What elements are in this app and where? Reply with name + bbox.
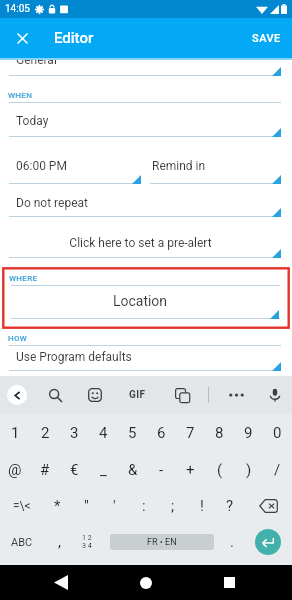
button[interactable]: 4 [89, 415, 118, 451]
staticText: + [186, 461, 195, 479]
button[interactable]: Translate [171, 384, 193, 406]
staticText: ; [171, 497, 175, 515]
button[interactable]: " [72, 488, 101, 524]
staticText: @ [8, 461, 22, 479]
button[interactable]: 0 [263, 415, 292, 451]
button[interactable]: _ [89, 452, 118, 488]
staticText: / [274, 461, 281, 479]
staticText: =\< [13, 499, 31, 513]
button[interactable]: @ [0, 452, 30, 488]
staticText: 1 2 [82, 534, 92, 542]
staticText: ( [217, 461, 223, 479]
staticText: SAVE [252, 32, 281, 45]
staticText: 5 [128, 424, 137, 442]
staticText: ? [226, 497, 234, 515]
button[interactable]: 6 [147, 415, 176, 451]
button[interactable]: * [43, 488, 72, 524]
button[interactable]: 3 [60, 415, 89, 451]
button[interactable]: Back [43, 565, 79, 600]
staticText: ABC [11, 536, 33, 549]
button[interactable]: Backspace [244, 488, 292, 524]
button[interactable]: More options [225, 384, 247, 406]
button[interactable]: ' [100, 488, 129, 524]
button[interactable]: SAVE [241, 21, 292, 56]
staticText: GIF [129, 389, 146, 401]
button[interactable]: # [30, 452, 60, 488]
button[interactable]: : [129, 488, 158, 524]
staticText: WHERE [9, 274, 38, 283]
button[interactable]: Stickers [84, 384, 106, 406]
staticText: 4 [99, 424, 108, 442]
button[interactable]: Close [8, 24, 36, 52]
staticText: ) [246, 461, 252, 479]
staticText: Location [0, 293, 280, 309]
button[interactable]: 1 [0, 415, 30, 451]
button[interactable]: . [219, 524, 245, 560]
staticText: 9 [244, 424, 253, 442]
button[interactable]: Search [44, 384, 66, 406]
staticText: 2 [41, 424, 50, 442]
staticText: : [142, 497, 146, 515]
staticText: 3 4 [82, 542, 92, 550]
button[interactable]: 9 [234, 415, 263, 451]
staticText: ' [113, 497, 116, 515]
button[interactable]: 7 [176, 415, 205, 451]
staticText: , [58, 533, 61, 551]
button[interactable]: Enter [255, 529, 281, 555]
staticText: HOW [8, 334, 28, 343]
staticText: 0 [273, 424, 282, 442]
staticText: Editor [54, 29, 94, 47]
staticText: # [40, 461, 50, 479]
staticText: * [54, 497, 61, 515]
staticText: Click here to set a pre-alert [0, 236, 281, 250]
staticText: 6 [157, 424, 166, 442]
staticText: Do not repeat [16, 196, 88, 210]
staticText: Today [16, 114, 49, 128]
staticText: _ [100, 461, 107, 479]
button[interactable]: 2 [30, 415, 60, 451]
button[interactable]: ? [215, 488, 244, 524]
staticText: & [128, 461, 138, 479]
staticText: " [84, 497, 89, 515]
staticText: Use Program defaults [16, 350, 132, 364]
button[interactable]: GIF [129, 389, 146, 401]
button[interactable]: Voice input [264, 384, 286, 406]
staticText: General [16, 53, 57, 67]
button[interactable]: + [176, 452, 205, 488]
button[interactable]: - [147, 452, 176, 488]
staticText: 3 [70, 424, 79, 442]
button[interactable]: / [263, 452, 292, 488]
button[interactable]: FR • EN [110, 534, 214, 550]
button[interactable]: ! [187, 488, 216, 524]
staticText: . [230, 533, 234, 551]
staticText: FR • EN [147, 537, 177, 548]
button[interactable]: Home [128, 565, 164, 600]
button[interactable]: 1 2 [74, 524, 100, 560]
button[interactable]: ; [158, 488, 187, 524]
button[interactable]: , [44, 524, 74, 560]
staticText: - [159, 461, 164, 479]
button[interactable]: Previous suggestions [7, 385, 27, 405]
button[interactable]: ABC [0, 524, 44, 560]
staticText: Remind in [152, 159, 206, 173]
button[interactable]: Recent apps [211, 565, 247, 600]
staticText: 1 [11, 424, 20, 442]
button[interactable]: & [118, 452, 147, 488]
staticText: WHEN [8, 91, 33, 100]
staticText: 06:00 PM [16, 159, 67, 173]
staticText: ! [200, 497, 204, 515]
button[interactable]: ) [234, 452, 263, 488]
button[interactable]: ( [205, 452, 234, 488]
button[interactable]: € [60, 452, 89, 488]
staticText: 7 [186, 424, 195, 442]
staticText: € [70, 461, 79, 479]
staticText: 8 [215, 424, 224, 442]
button[interactable]: 5 [118, 415, 147, 451]
staticText: 14:05 [5, 3, 30, 15]
button[interactable]: 8 [205, 415, 234, 451]
button[interactable]: =\< [0, 488, 43, 524]
